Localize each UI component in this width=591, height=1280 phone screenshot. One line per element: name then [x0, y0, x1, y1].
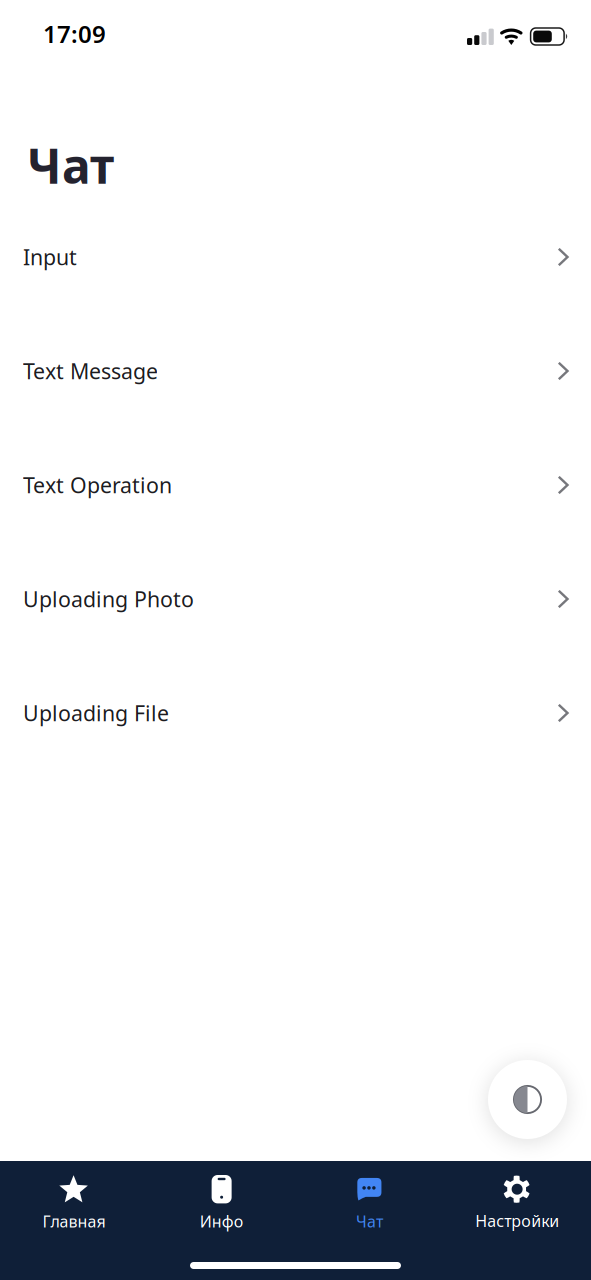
staticText: Input — [23, 243, 77, 271]
staticText: Text Operation — [23, 471, 172, 499]
staticText: Чат — [27, 133, 114, 197]
staticText: Настройки — [475, 1210, 559, 1231]
staticText: Uploading Photo — [23, 585, 194, 613]
button[interactable]: Input — [0, 200, 591, 314]
staticText: Инфо — [200, 1211, 244, 1232]
button[interactable]: Главная — [0, 1161, 148, 1228]
button[interactable]: Настройки — [443, 1162, 591, 1228]
button[interactable]: Инфо — [148, 1161, 296, 1228]
staticText: Uploading File — [23, 699, 169, 727]
staticText: Text Message — [23, 357, 158, 385]
staticText: 17:09 — [43, 18, 106, 49]
staticText: Главная — [42, 1211, 105, 1232]
button[interactable]: Uploading Photo — [0, 542, 591, 656]
button[interactable]: Toggle appearance — [488, 1060, 567, 1139]
button[interactable]: Text Operation — [0, 428, 591, 542]
button[interactable]: Чат — [295, 1161, 443, 1228]
staticText: Чат — [356, 1211, 383, 1232]
button[interactable]: Text Message — [0, 314, 591, 428]
button[interactable]: Uploading File — [0, 656, 591, 770]
